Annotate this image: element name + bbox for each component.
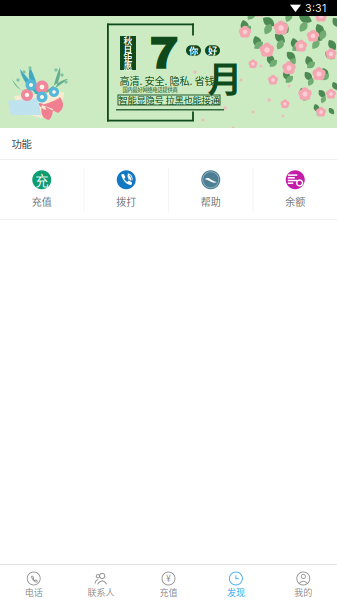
staticText: 钜 xyxy=(123,51,132,63)
staticText: 7 xyxy=(149,29,179,78)
staticText: 高清. 安全. 隐私. 省钱 xyxy=(119,73,214,88)
staticText: 好 xyxy=(208,44,217,57)
button[interactable]: 拨打 xyxy=(84,160,168,219)
staticText: 国内最好网络电话提供商 xyxy=(122,86,177,93)
staticText: 惠 xyxy=(123,59,132,72)
staticText: 3:31 xyxy=(305,1,326,14)
staticText: 充值 xyxy=(159,585,177,599)
staticText: 智能显隐号 拉黑也能接通 xyxy=(118,93,219,107)
staticText: 发现 xyxy=(227,585,245,599)
staticText: 秋 xyxy=(123,34,132,47)
staticText: 日 xyxy=(123,42,132,55)
staticText: ¥ xyxy=(166,573,171,584)
staticText: 联系人 xyxy=(88,585,115,599)
button[interactable]: 余额 xyxy=(253,160,337,219)
staticText: 你 xyxy=(189,44,198,57)
staticText: 余额 xyxy=(285,194,305,209)
staticText: 电话 xyxy=(25,585,43,599)
staticText: 帮助 xyxy=(201,194,221,209)
staticText: 充值 xyxy=(32,194,52,209)
staticText: 我的 xyxy=(294,585,312,599)
staticText: 充 xyxy=(35,170,48,189)
button[interactable]: 联系人 xyxy=(67,565,135,600)
button[interactable]: 我的 xyxy=(270,565,337,600)
button[interactable]: 帮助 xyxy=(169,160,252,219)
button[interactable]: ¥ xyxy=(135,565,202,600)
staticText: 功能 xyxy=(11,136,31,151)
staticText: 月 xyxy=(207,52,242,103)
button[interactable]: 发现 xyxy=(202,565,270,600)
button[interactable]: 电话 xyxy=(0,565,67,600)
button[interactable]: 充 xyxy=(0,160,83,219)
staticText: 拨打 xyxy=(116,194,136,209)
